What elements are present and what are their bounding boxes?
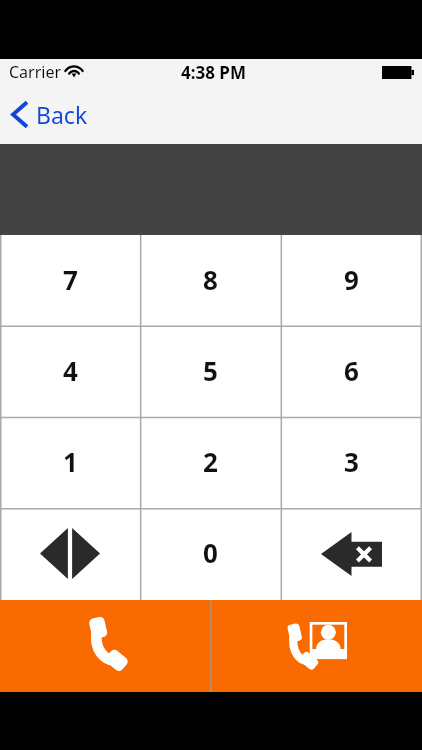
staticText: 3	[344, 444, 359, 479]
button[interactable]: 8	[140, 235, 281, 327]
button[interactable]: 6	[281, 327, 422, 418]
other: Previous or next	[40, 528, 100, 579]
button[interactable]: Previous or next	[0, 509, 140, 600]
staticText: 2	[203, 444, 218, 479]
button[interactable]: Back	[0, 93, 100, 136]
staticText: 8	[203, 262, 218, 297]
button[interactable]: Delete	[281, 509, 422, 600]
other: Delete	[321, 532, 382, 576]
staticText: 7	[63, 262, 78, 297]
staticText: 4	[63, 353, 78, 388]
staticText: Back	[36, 99, 88, 130]
staticText: 5	[203, 353, 218, 388]
button[interactable]: 5	[140, 327, 281, 418]
button[interactable]: Call	[0, 600, 210, 692]
staticText: 4:38 PM	[181, 61, 246, 84]
button[interactable]: 0	[140, 509, 281, 600]
button[interactable]: Video call	[212, 600, 422, 692]
staticText: Carrier	[9, 61, 62, 83]
button[interactable]: 3	[281, 418, 422, 509]
button[interactable]: 4	[0, 327, 140, 418]
staticText: 9	[344, 262, 359, 297]
button[interactable]: 1	[0, 418, 140, 509]
button[interactable]: 7	[0, 235, 140, 327]
staticText: 6	[344, 353, 359, 388]
staticText: 0	[203, 535, 218, 570]
button[interactable]: 9	[281, 235, 422, 327]
staticText: 1	[63, 444, 78, 479]
button[interactable]: 2	[140, 418, 281, 509]
